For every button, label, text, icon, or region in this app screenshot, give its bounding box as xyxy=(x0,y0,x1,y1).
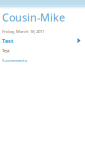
button[interactable]: 5 comments xyxy=(0,53,27,63)
staticText: Friday, March 18, 2011 xyxy=(2,28,44,34)
staticText: Cousin-Mike xyxy=(2,10,65,24)
staticText: Test xyxy=(2,37,13,45)
button[interactable]: Test xyxy=(0,34,13,45)
staticText: 5 comments xyxy=(2,57,27,63)
staticText: Test xyxy=(2,48,10,53)
